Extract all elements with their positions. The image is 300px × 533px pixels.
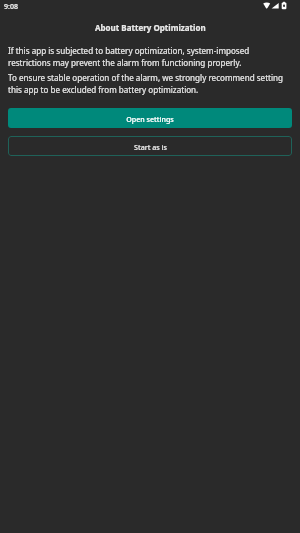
staticText: Open settings bbox=[126, 114, 174, 124]
staticText: To ensure stable operation of the alarm,… bbox=[8, 72, 292, 95]
staticText: If this app is subjected to battery opti… bbox=[8, 45, 292, 68]
other: Status icons bbox=[262, 2, 288, 11]
staticText: Start as is bbox=[134, 142, 167, 152]
staticText: About Battery Optimization bbox=[95, 22, 206, 33]
button[interactable]: Start as is bbox=[8, 136, 292, 156]
staticText: 9:08 bbox=[4, 2, 18, 12]
button[interactable]: Open settings bbox=[8, 108, 292, 128]
